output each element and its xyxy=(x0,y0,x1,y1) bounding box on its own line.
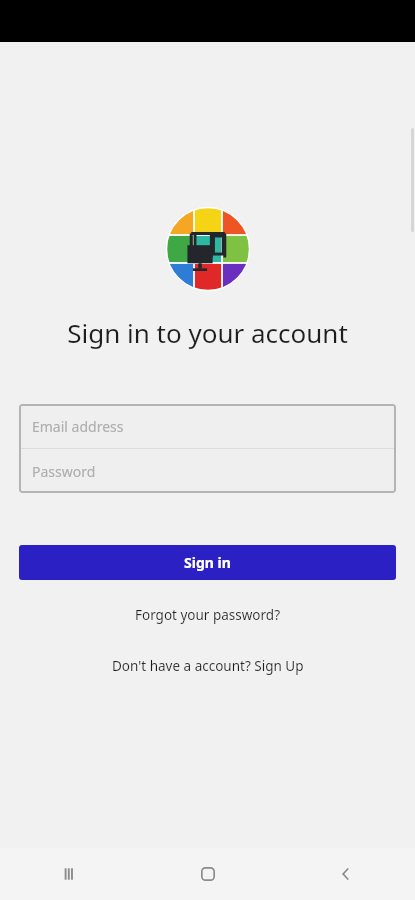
button[interactable]: Recents xyxy=(0,848,139,900)
staticText: Forgot your password? xyxy=(135,606,281,624)
button[interactable]: Email address xyxy=(19,404,396,448)
button[interactable]: Password xyxy=(19,449,396,493)
staticText: Don't have a account? Sign Up xyxy=(112,657,304,675)
button[interactable]: Sign in xyxy=(19,545,396,580)
button[interactable]: Back xyxy=(277,848,415,900)
button[interactable]: Forgot your password? xyxy=(125,602,291,628)
staticText: Email address xyxy=(32,417,124,436)
staticText: Sign in to your account xyxy=(67,315,348,350)
staticText: Sign in xyxy=(184,553,231,572)
button[interactable]: Home xyxy=(139,848,277,900)
staticText: Password xyxy=(32,462,96,481)
button[interactable]: Don't have a account? Sign Up xyxy=(102,653,314,679)
